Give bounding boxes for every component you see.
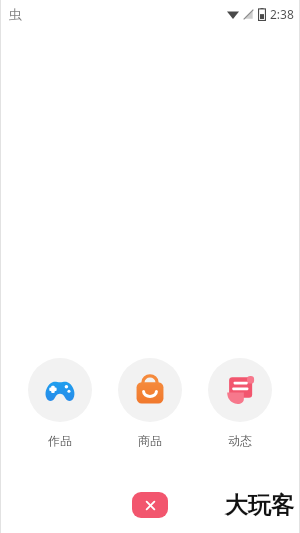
- staticText: 虫: [9, 6, 22, 22]
- button[interactable]: 动态: [202, 356, 278, 450]
- staticText: 作品: [48, 433, 72, 448]
- staticText: 2:38: [270, 6, 294, 22]
- button[interactable]: 商品: [112, 356, 188, 450]
- button[interactable]: 作品: [22, 356, 98, 450]
- staticText: 商品: [138, 433, 162, 448]
- staticText: 动态: [228, 433, 252, 448]
- staticText: 大玩客: [225, 491, 294, 520]
- button[interactable]: 关闭: [132, 492, 168, 518]
